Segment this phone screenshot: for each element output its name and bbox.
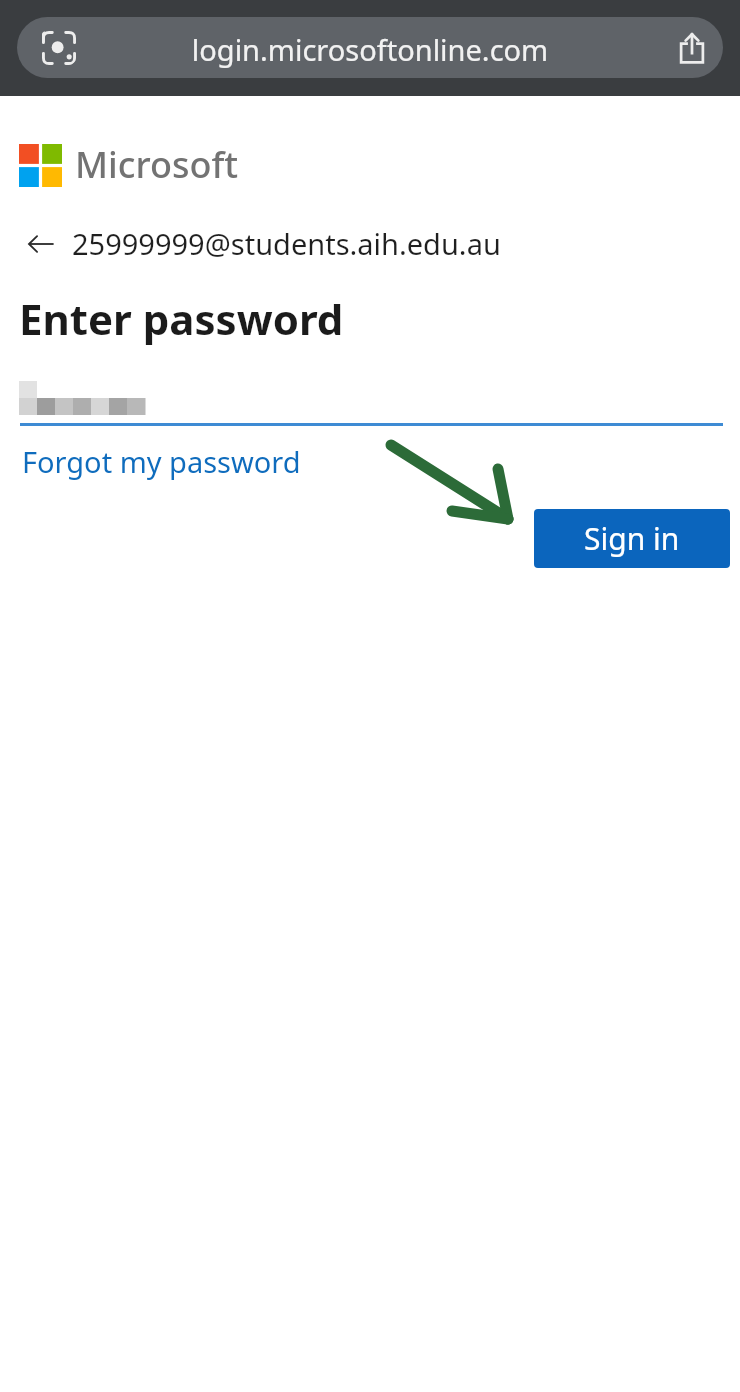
button[interactable]: Share — [670, 26, 713, 69]
button[interactable]: Search with Lens — [17, 17, 723, 78]
button[interactable]: Back — [27, 224, 501, 263]
staticText: Sign in — [584, 518, 680, 559]
staticText: Microsoft — [75, 140, 239, 189]
button[interactable]: Forgot my password — [22, 442, 301, 481]
button[interactable]: Password — [0, 370, 740, 433]
button[interactable]: Microsoft — [19, 141, 239, 190]
staticText: login.microsoftonline.com — [17, 30, 723, 69]
button[interactable]: Sign in — [534, 509, 730, 568]
button[interactable]: Search with Lens — [37, 26, 80, 69]
staticText: 25999999@students.aih.edu.au — [72, 224, 501, 263]
staticText: Enter password — [19, 290, 344, 347]
other: Back — [27, 230, 55, 258]
